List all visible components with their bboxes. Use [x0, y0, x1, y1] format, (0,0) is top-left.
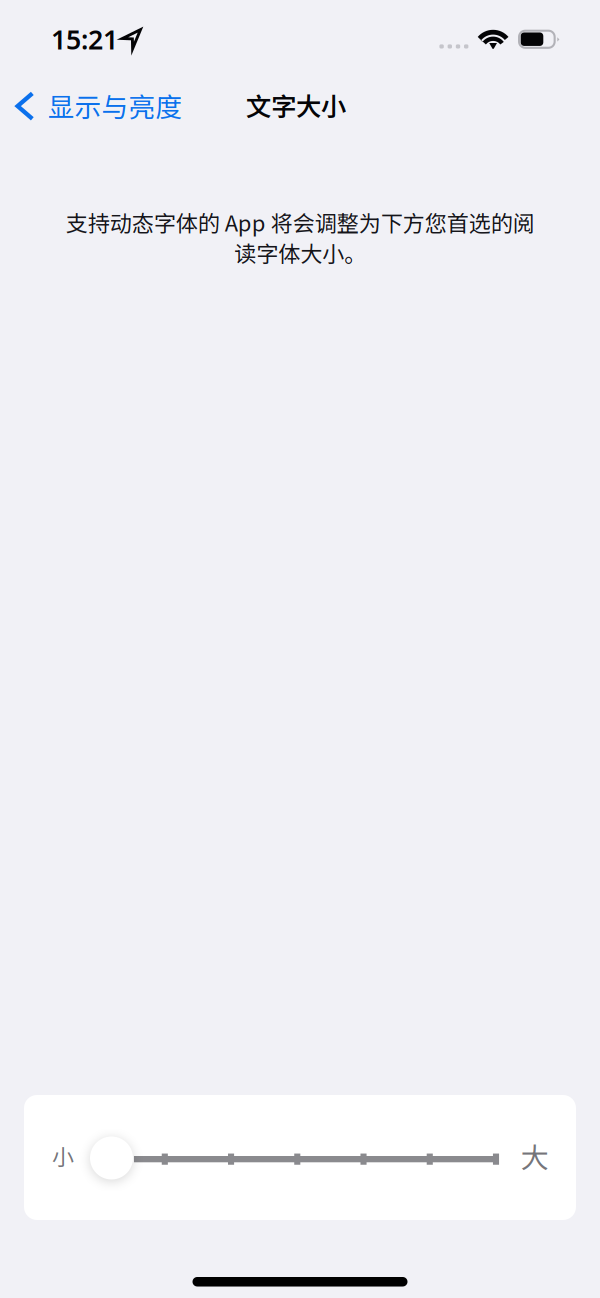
staticText: 文字大小 [246, 87, 346, 123]
staticText: 显示与亮度 [47, 86, 182, 125]
staticText: 大 [520, 1135, 548, 1176]
button[interactable]: 显示与亮度 [0, 72, 190, 128]
staticText: 支持动态字体的 App 将会调整为下方您首选的阅读字体大小。 [65, 206, 534, 268]
staticText: 15:21 [51, 21, 118, 57]
staticText: 小 [52, 1140, 74, 1171]
